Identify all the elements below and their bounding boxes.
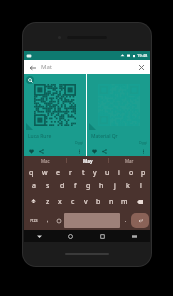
button[interactable]: f	[70, 180, 81, 191]
staticText: d	[60, 181, 65, 191]
button[interactable]: Recents	[86, 230, 118, 242]
button[interactable]: g	[83, 180, 94, 191]
staticText: y	[93, 168, 97, 178]
button[interactable]: l	[135, 180, 146, 191]
staticText: Luca Rure	[28, 133, 52, 140]
button[interactable]: b	[93, 193, 104, 210]
staticText: q	[29, 168, 34, 178]
button[interactable]: Home	[55, 230, 86, 242]
button[interactable]: More options	[75, 147, 83, 155]
button[interactable]: .	[120, 212, 131, 229]
button[interactable]: Share	[100, 147, 108, 155]
button[interactable]: j	[109, 180, 120, 191]
button[interactable]: d	[56, 180, 68, 191]
button[interactable]: Zoom	[24, 74, 86, 156]
button[interactable]: k	[122, 180, 133, 191]
staticText: j	[114, 181, 116, 191]
staticText: Dggi	[139, 140, 147, 145]
button[interactable]: May	[67, 156, 108, 165]
button[interactable]: Mac	[24, 156, 66, 165]
staticText: x	[58, 197, 62, 207]
staticText: .	[125, 217, 127, 224]
staticText: f	[74, 181, 77, 191]
staticText: Material Qr	[91, 133, 118, 140]
button[interactable]: a	[28, 180, 40, 191]
staticText: Mar	[125, 158, 134, 164]
button[interactable]: Key	[26, 193, 41, 210]
button[interactable]: Material Qr	[87, 74, 150, 156]
staticText: Mat	[41, 63, 52, 71]
staticText: ,	[47, 217, 49, 224]
button[interactable]: Share	[37, 147, 45, 155]
button[interactable]: Enter	[131, 213, 149, 228]
staticText: a	[32, 181, 36, 191]
staticText: v	[84, 197, 88, 207]
staticText: l	[140, 181, 142, 191]
button[interactable]: Favorite	[27, 147, 35, 155]
button[interactable]: y	[90, 167, 100, 178]
staticText: t	[82, 168, 85, 178]
staticText: e	[56, 168, 60, 178]
button[interactable]: e	[52, 167, 63, 178]
button[interactable]: Favorite	[90, 147, 98, 155]
staticText: r	[69, 168, 72, 178]
staticText: i	[118, 168, 120, 178]
staticText: o	[129, 168, 134, 178]
button[interactable]: q	[26, 167, 37, 178]
staticText: c	[71, 197, 75, 207]
button[interactable]: Back	[28, 63, 37, 72]
button[interactable]: w	[39, 167, 50, 178]
button[interactable]: Switch keyboard	[118, 230, 150, 242]
button[interactable]: Back	[24, 230, 55, 242]
button[interactable]: o	[126, 167, 136, 178]
staticText: n	[109, 197, 114, 207]
button[interactable]: s	[42, 180, 54, 191]
button[interactable]: More options	[139, 147, 147, 155]
button[interactable]: x	[55, 193, 65, 210]
button[interactable]: Emoji	[53, 212, 64, 229]
button[interactable]: h	[96, 180, 107, 191]
button[interactable]: p	[138, 167, 148, 178]
button[interactable]: Zoom	[26, 76, 34, 84]
staticText: g	[86, 181, 91, 191]
staticText: u	[105, 168, 110, 178]
button[interactable]: Key	[132, 193, 148, 210]
button[interactable]: n	[106, 193, 117, 210]
staticText: m	[121, 197, 128, 207]
button[interactable]: Clear	[137, 63, 146, 72]
staticText: b	[96, 197, 101, 207]
staticText: 19:48	[137, 53, 148, 58]
button[interactable]: u	[102, 167, 112, 178]
button[interactable]: ?123	[25, 212, 42, 229]
button[interactable]: ,	[42, 212, 53, 229]
button[interactable]: t	[78, 167, 88, 178]
staticText: s	[46, 181, 50, 191]
staticText: w	[42, 168, 48, 178]
staticText: p	[141, 168, 146, 178]
button[interactable]: r	[65, 167, 76, 178]
button[interactable]: m	[119, 193, 130, 210]
button[interactable]: Mar	[109, 156, 150, 165]
staticText: Mac	[41, 158, 50, 164]
staticText: May	[83, 158, 93, 164]
staticText: k	[126, 181, 130, 191]
button[interactable]: c	[67, 193, 78, 210]
staticText: z	[46, 197, 50, 207]
button[interactable]: z	[43, 193, 53, 210]
staticText: ?123	[30, 218, 38, 223]
button[interactable]: i	[114, 167, 124, 178]
button[interactable]: v	[80, 193, 91, 210]
staticText: Dggi	[75, 140, 83, 145]
staticText: h	[99, 181, 104, 191]
